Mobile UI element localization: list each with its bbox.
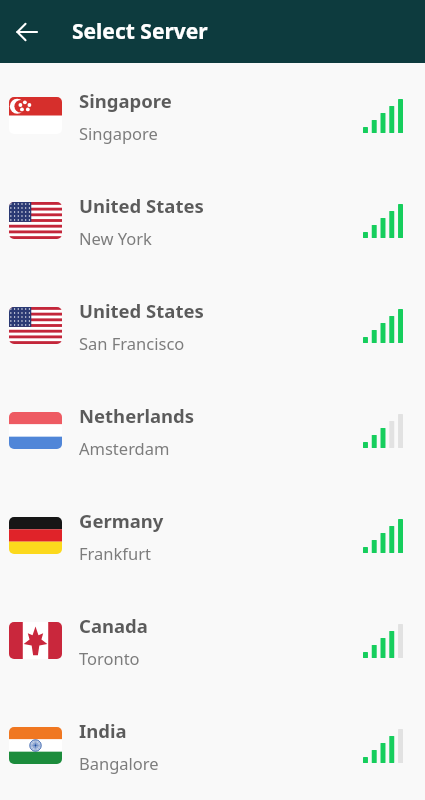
button[interactable]: Singapore bbox=[0, 63, 425, 168]
button[interactable]: India bbox=[0, 693, 425, 798]
staticText: United States bbox=[79, 193, 204, 218]
staticText: Germany bbox=[79, 508, 164, 533]
staticText: United States bbox=[79, 298, 204, 323]
staticText: Canada bbox=[79, 613, 148, 638]
staticText: San Francisco bbox=[79, 332, 185, 354]
staticText: New York bbox=[79, 227, 152, 249]
button[interactable]: Netherlands bbox=[0, 378, 425, 483]
staticText: Singapore bbox=[79, 122, 158, 144]
button[interactable]: Back bbox=[4, 9, 50, 55]
staticText: Bangalore bbox=[79, 752, 159, 774]
staticText: Singapore bbox=[79, 88, 172, 113]
button[interactable]: Germany bbox=[0, 483, 425, 588]
staticText: India bbox=[79, 718, 127, 743]
staticText: Netherlands bbox=[79, 403, 195, 428]
staticText: Frankfurt bbox=[79, 542, 151, 564]
button[interactable]: Canada bbox=[0, 588, 425, 693]
staticText: Select Server bbox=[72, 17, 208, 46]
staticText: Toronto bbox=[79, 647, 140, 669]
button[interactable]: United States bbox=[0, 168, 425, 273]
button[interactable]: United States bbox=[0, 273, 425, 378]
staticText: Amsterdam bbox=[79, 437, 170, 459]
